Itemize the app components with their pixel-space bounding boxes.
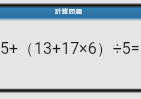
button[interactable]: 5+（13+17×6）÷5= (0, 38, 141, 58)
button[interactable]: 計算問題 (0, 4, 141, 21)
staticText: 計算問題 (55, 8, 83, 15)
staticText: 5+（13+17×6）÷5= (0, 39, 141, 59)
